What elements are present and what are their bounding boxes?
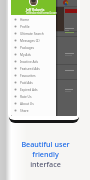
staticText: Rate Us: [20, 95, 32, 99]
staticText: Messages (2): [20, 39, 40, 43]
button[interactable]: Favourites: [11, 72, 56, 79]
button[interactable]: Home: [11, 16, 56, 23]
button[interactable]: Share: [11, 107, 56, 114]
button[interactable]: About Us: [11, 100, 56, 107]
staticText: Jeff Roberts: [26, 7, 45, 11]
staticText: Profile: [20, 25, 30, 29]
staticText: Packages: [20, 46, 35, 50]
staticText: Paid Ads: [20, 81, 33, 85]
staticText: Beautiful user: [21, 139, 70, 149]
button[interactable]: Expired Ads: [11, 86, 56, 93]
button[interactable]: Featured Ads: [11, 65, 56, 72]
staticText: interface: [30, 159, 61, 169]
button[interactable]: Paid Ads: [11, 79, 56, 86]
staticText: Home: [20, 18, 30, 22]
staticText: About Us: [20, 102, 34, 106]
button[interactable]: Ultimate Search: [11, 30, 56, 37]
button[interactable]: Messages (2): [11, 37, 56, 44]
staticText: My Ads: [20, 53, 31, 57]
staticText: Featured Ads: [20, 67, 40, 71]
button[interactable]: Profile: [11, 23, 56, 30]
button[interactable]: Rate Us: [11, 93, 56, 100]
button[interactable]: Inactive Ads: [11, 58, 56, 65]
button[interactable]: My Ads: [11, 51, 56, 58]
staticText: Ultimate Search: [20, 32, 44, 36]
staticText: Favourites: [20, 74, 36, 78]
staticText: jeffroberts@gmail.com: [26, 11, 58, 14]
staticText: friendly: [32, 149, 59, 159]
staticText: Inactive Ads: [20, 60, 39, 64]
staticText: Expired Ads: [20, 88, 38, 92]
staticText: Share: [20, 109, 29, 113]
button[interactable]: Packages: [11, 44, 56, 51]
